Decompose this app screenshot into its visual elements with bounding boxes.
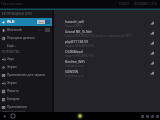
staticText: Защита WPA/WPA2 PSK: [65, 54, 94, 58]
button[interactable]: Память: [0, 87, 52, 95]
staticText: Экран: [7, 81, 50, 85]
staticText: БЕСПРОВОДНЫЕ СЕТИ: [2, 12, 32, 16]
staticText: hasasfc_wifi: [65, 19, 85, 24]
staticText: Приложение для экрана блокировки: [7, 73, 50, 77]
staticText: Настройки: [1, 1, 23, 7]
button[interactable]: ВКЛ: [37, 20, 50, 24]
staticText: Bluetooth: [7, 28, 37, 32]
button[interactable]: ПОИСК: [117, 1, 132, 7]
button[interactable]: ДОБАВИТЬ СЕТЬ: [132, 1, 159, 7]
button[interactable]: phpBT1138.59: [54, 38, 160, 48]
button[interactable]: Beeline_WiFi: [54, 58, 160, 68]
staticText: ЛИЧНЫЕ ДАННЫЕ: [2, 111, 26, 112]
button[interactable]: Экран: [0, 63, 52, 71]
staticText: Память: [7, 89, 50, 93]
staticText: Beeline_WiFi: [65, 59, 85, 64]
button[interactable]: Приложение для экрана блокировки: [0, 71, 52, 79]
staticText: Защита WPA/WPA2 PSK: [65, 44, 94, 48]
button[interactable]: Back: [0, 112, 8, 120]
button[interactable]: Звук: [0, 55, 52, 63]
staticText: Экран: [7, 65, 50, 69]
staticText: Батарея: [7, 97, 50, 101]
staticText: OLIMAlocal: [65, 49, 84, 54]
button[interactable]: Приложения: [0, 103, 52, 111]
button[interactable]: Wi-Fi: [0, 18, 52, 26]
button[interactable]: SGWDW: [54, 68, 160, 78]
staticText: Звук: [7, 57, 50, 61]
staticText: Ещё...: [7, 44, 50, 48]
staticText: Защита WPA2: [65, 24, 83, 28]
staticText: ВЫКЛ: [38, 29, 45, 32]
button[interactable]: Экран: [0, 79, 52, 87]
staticText: SGWDW: [65, 69, 79, 74]
staticText: Открытая сеть: [65, 74, 84, 78]
staticText: ВКЛ: [39, 21, 44, 24]
staticText: ПОИСК: [119, 2, 130, 6]
button[interactable]: Home: [8, 112, 17, 120]
staticText: Grand NK_Vi-Net: [65, 29, 92, 34]
button[interactable]: Grand NK_Vi-Net: [54, 28, 160, 38]
staticText: phpBT1138.59: [65, 39, 88, 44]
staticText: Открытая сеть: [65, 64, 84, 68]
staticText: Передача данных: [7, 36, 50, 40]
staticText: УСТРОЙСТВО: [2, 50, 20, 54]
staticText: Wi-Fi: [7, 20, 37, 24]
button[interactable]: hasasfc_wifi: [54, 18, 160, 28]
button[interactable]: OLIMAlocal: [54, 48, 160, 58]
button[interactable]: Передача данных: [0, 34, 52, 42]
button[interactable]: Bluetooth: [0, 26, 52, 34]
staticText: Приложения: [7, 105, 50, 109]
button[interactable]: Батарея: [0, 95, 52, 103]
staticText: Защита WPA/WPA2 PSK (доступно подключени…: [65, 34, 132, 38]
button[interactable]: Ещё...: [0, 42, 52, 50]
button[interactable]: ВЫКЛ: [37, 28, 50, 32]
staticText: ДОБАВИТЬ СЕТЬ: [134, 2, 157, 6]
